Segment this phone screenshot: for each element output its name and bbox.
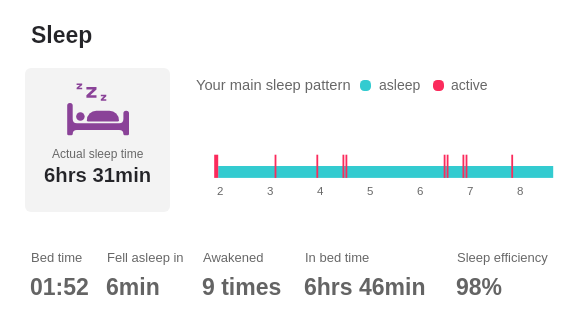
staticText: Sleep xyxy=(31,22,93,48)
staticText: Sleep efficiency xyxy=(457,250,548,265)
button[interactable]: Sleep efficiency xyxy=(457,250,552,298)
button[interactable] xyxy=(25,68,170,212)
button[interactable]: In bed time xyxy=(305,250,433,298)
staticText: Fell asleep in xyxy=(107,250,184,265)
other: Sleep pattern chart xyxy=(190,148,580,184)
staticText: In bed time xyxy=(305,250,370,265)
staticText: active xyxy=(451,77,488,93)
staticText: 6hrs 46min xyxy=(304,274,426,300)
staticText: 01:52 xyxy=(30,274,89,300)
staticText: 5 xyxy=(367,185,374,198)
staticText: Bed time xyxy=(31,250,83,265)
staticText: 3 xyxy=(267,185,274,198)
staticText: 9 times xyxy=(202,274,282,300)
staticText: 98% xyxy=(456,274,503,300)
staticText: 6 xyxy=(417,185,424,198)
staticText: Actual sleep time xyxy=(52,147,144,160)
staticText: 6min xyxy=(106,274,160,300)
staticText: Awakened xyxy=(203,250,264,265)
staticText: 8 xyxy=(517,185,524,198)
staticText: Your main sleep pattern xyxy=(196,77,351,93)
button[interactable]: Bed time xyxy=(31,250,101,298)
button[interactable]: Fell asleep in xyxy=(107,250,197,298)
staticText: 7 xyxy=(467,185,474,198)
staticText: 4 xyxy=(317,185,324,198)
staticText: 6hrs 31min xyxy=(44,164,152,187)
button[interactable]: Awakened xyxy=(203,250,298,298)
staticText: asleep xyxy=(379,77,421,93)
staticText: 2 xyxy=(217,185,224,198)
